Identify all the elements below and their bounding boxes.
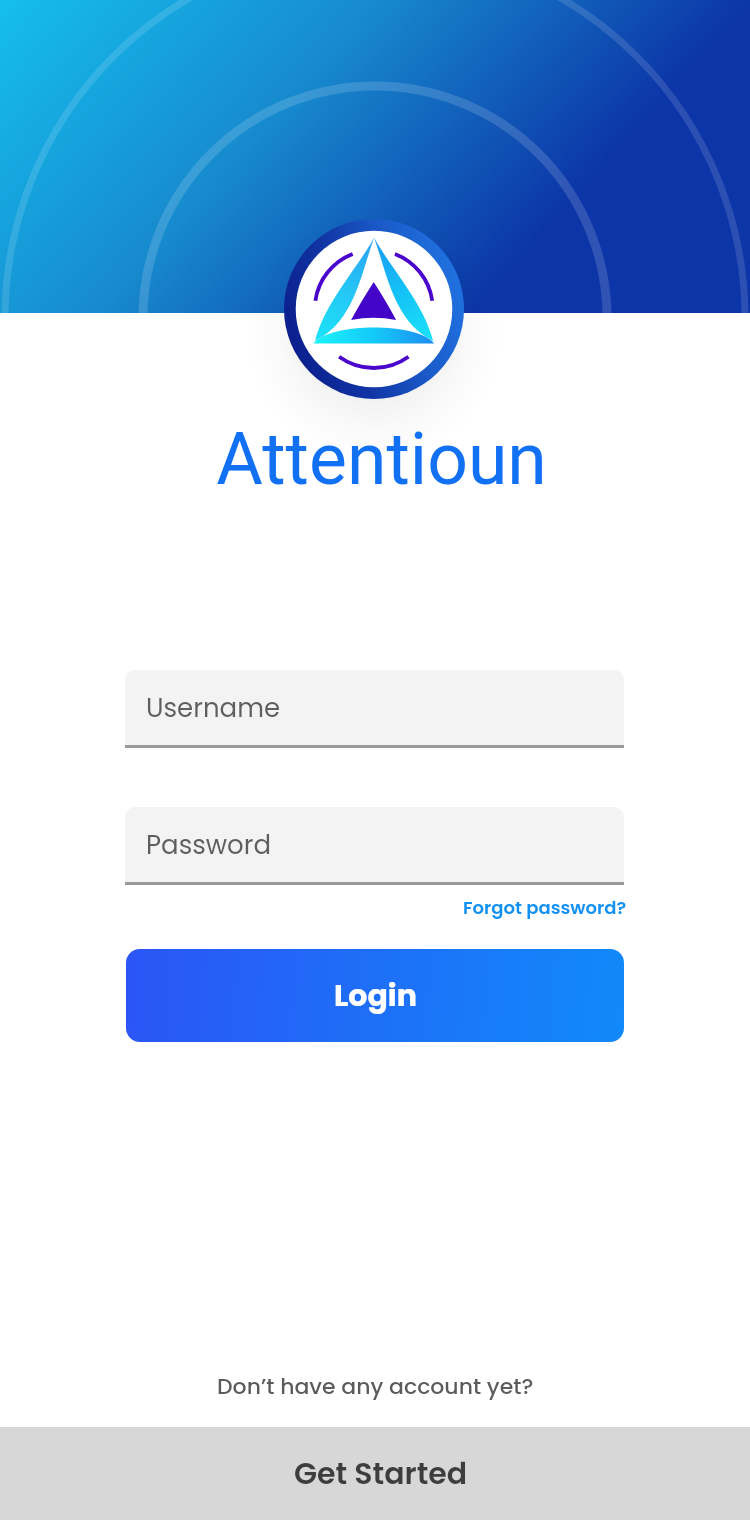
- staticText: Password: [146, 827, 272, 863]
- staticText: Attentioun: [216, 418, 547, 502]
- button[interactable]: Don’t have any account yet?: [217, 1371, 534, 1402]
- staticText: Login: [334, 975, 417, 1017]
- staticText: Get Started: [294, 1453, 468, 1495]
- button[interactable]: Login: [126, 949, 624, 1042]
- button[interactable]: Forgot password?: [463, 895, 627, 920]
- button[interactable]: Username: [125, 670, 624, 748]
- staticText: Forgot password?: [463, 895, 627, 920]
- staticText: Don’t have any account yet?: [217, 1371, 534, 1402]
- staticText: Username: [146, 690, 281, 726]
- button[interactable]: Get Started: [0, 1427, 750, 1520]
- button[interactable]: Password: [125, 807, 624, 885]
